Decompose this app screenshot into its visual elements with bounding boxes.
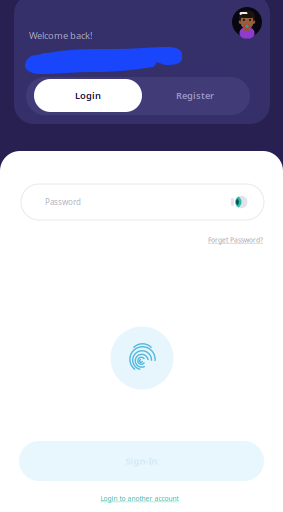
button[interactable]: Login to another account [100,494,178,503]
staticText: Login to another account [100,494,178,503]
staticText: Forget Password? [208,236,263,244]
staticText: Sign-In [125,455,157,467]
staticText: Welcome back! [29,29,93,42]
staticText: Login [75,89,101,102]
button[interactable]: Sign-In [19,441,264,481]
staticText: Register [176,89,214,102]
button[interactable]: Register [150,79,240,112]
button[interactable]: Sign in with fingerprint [110,326,173,389]
button[interactable]: Show password [230,195,250,209]
button[interactable]: Login [34,79,142,112]
staticText: Password [45,197,81,207]
button[interactable]: Forget Password? [208,236,263,244]
